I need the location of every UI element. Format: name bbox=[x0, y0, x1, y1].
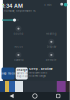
button[interactable]: Focus bbox=[2, 39, 35, 48]
button[interactable]: Profile bbox=[60, 2, 63, 6]
staticText: Focus bbox=[14, 45, 22, 48]
button[interactable]: Recents bbox=[46, 94, 70, 98]
staticText: Plug in soon bbox=[17, 75, 29, 78]
staticText: Hearing bbox=[46, 32, 57, 35]
button[interactable]: Brightness bbox=[2, 18, 19, 22]
staticText: 3 min bbox=[44, 3, 52, 6]
staticText: 1:34 AM bbox=[2, 2, 23, 9]
staticText: Remote bbox=[46, 58, 57, 61]
button[interactable]: Home bbox=[23, 94, 47, 98]
staticText: Wind down starts bbox=[29, 71, 47, 74]
button[interactable]: sleep mode bbox=[1, 67, 14, 79]
button[interactable]: Hearing bbox=[35, 26, 68, 35]
button[interactable]: Sound bbox=[2, 26, 35, 35]
staticText: sleep mode bbox=[1, 72, 15, 75]
button[interactable]: Camera bbox=[2, 52, 35, 61]
button[interactable]: Remote bbox=[35, 52, 68, 61]
button[interactable]: Charge now bbox=[16, 67, 28, 79]
button[interactable]: Connection status bbox=[63, 2, 68, 7]
button[interactable]: Back bbox=[0, 94, 23, 98]
staticText: Display bbox=[47, 45, 56, 48]
staticText: Sleep · Bedtime bbox=[29, 67, 53, 71]
staticText: Thursday, September 15 bbox=[2, 9, 36, 12]
button[interactable]: Sleep schedule bbox=[29, 67, 68, 77]
button[interactable]: Display bbox=[35, 39, 68, 48]
staticText: Battery low bbox=[17, 72, 29, 75]
staticText: Sound bbox=[13, 32, 23, 35]
staticText: Camera bbox=[14, 58, 23, 61]
staticText: 10:30 PM tonight bbox=[29, 75, 46, 77]
staticText: Charge now bbox=[17, 68, 35, 72]
